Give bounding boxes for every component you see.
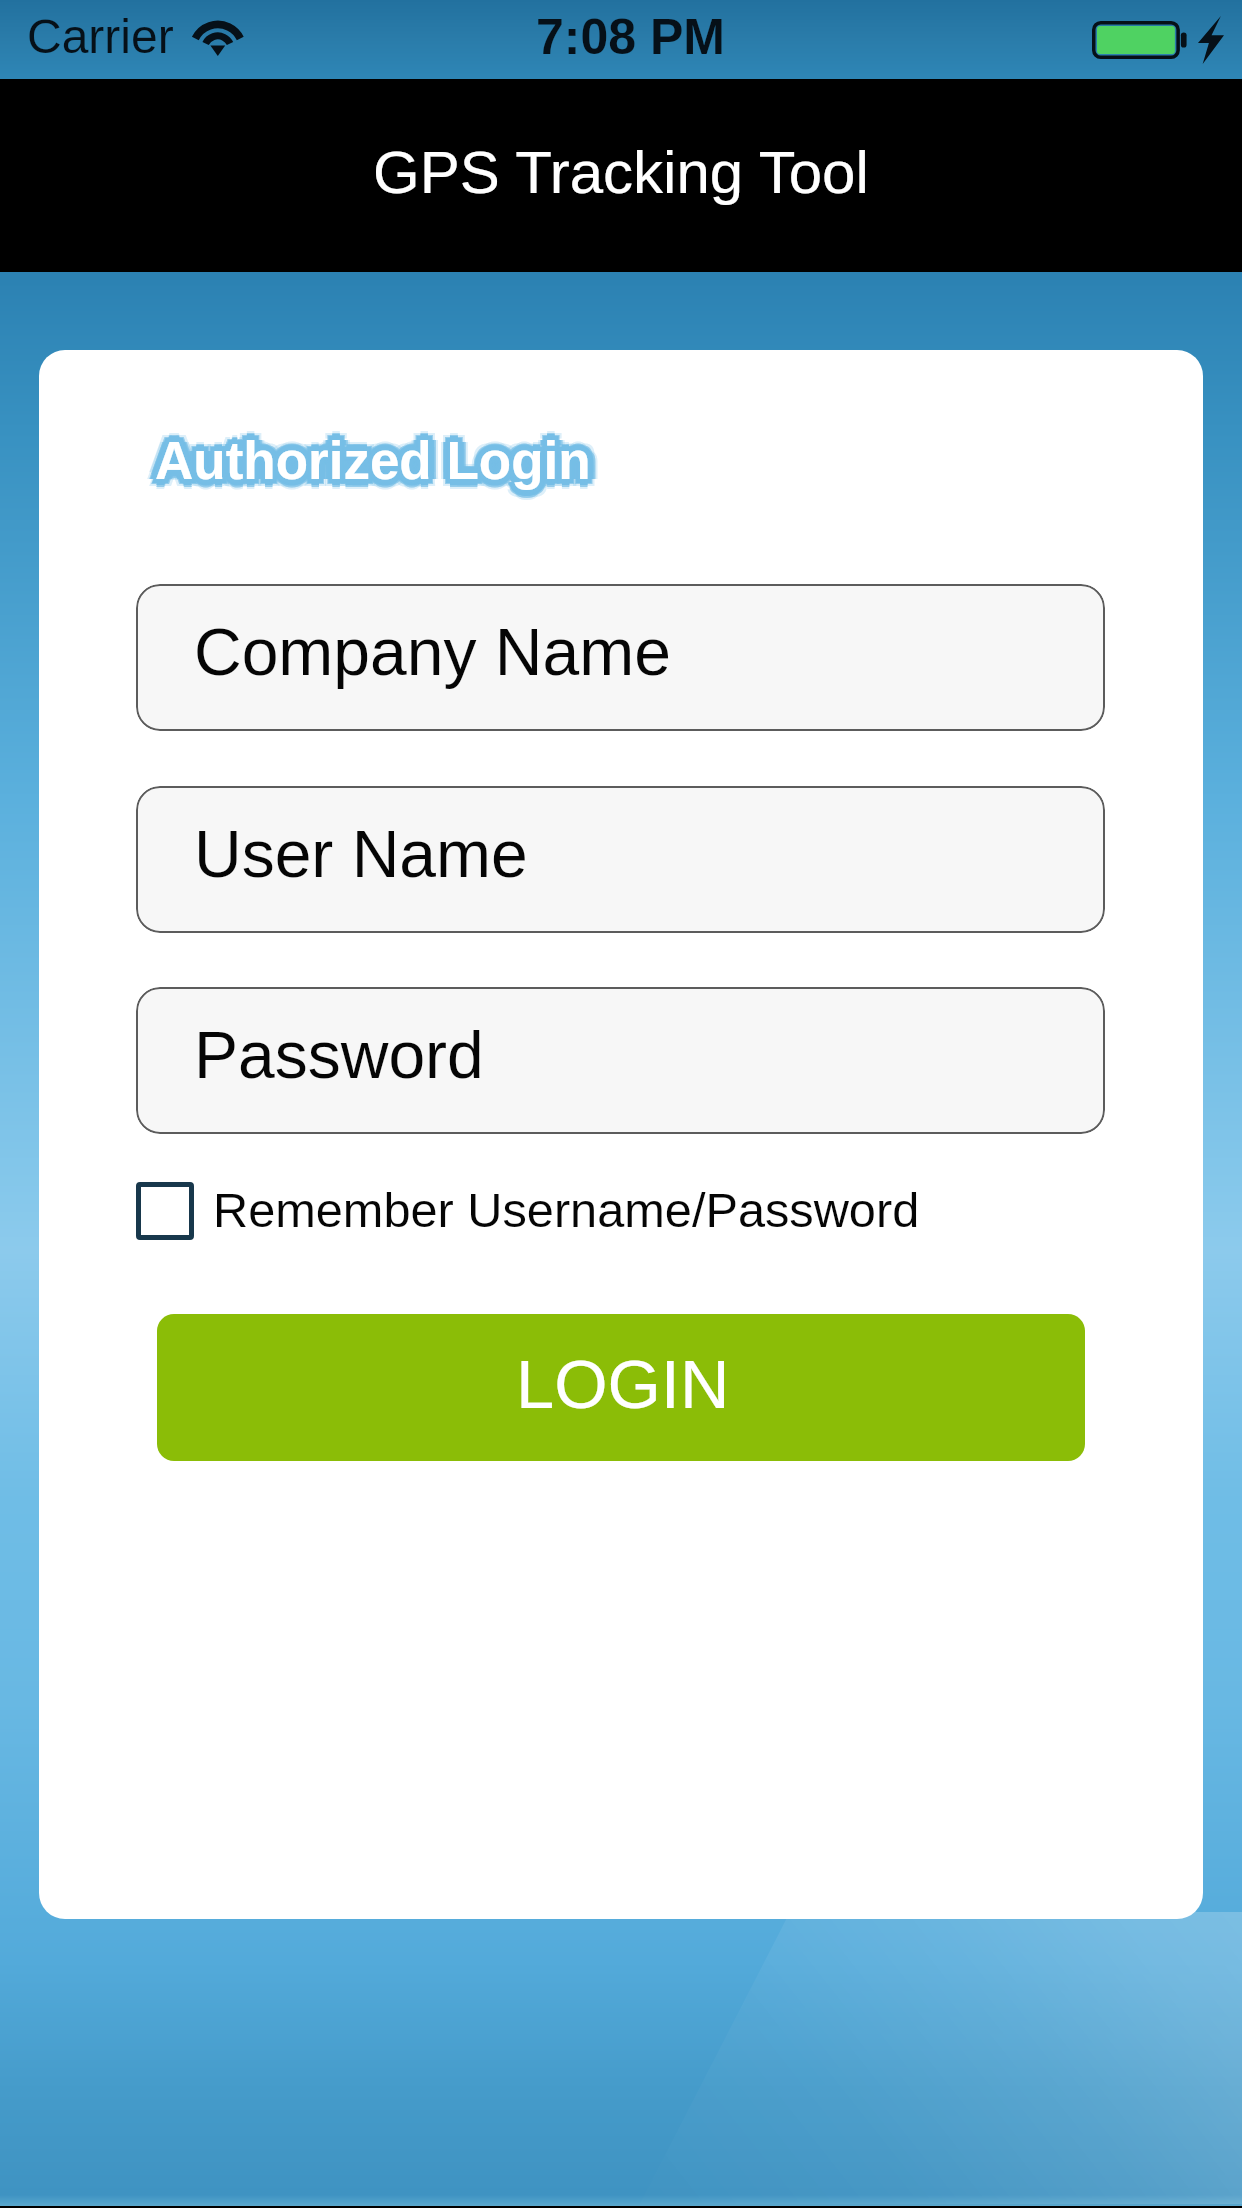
staticText: Authorized Login [155,422,591,481]
staticText: Remember Username/Password [213,1183,920,1237]
staticText: Password [194,1018,484,1092]
staticText: Authorized Login [160,436,596,495]
staticText: Authorized Login [158,428,594,487]
staticText: Authorized Login [150,436,586,495]
staticText: Authorized Login [152,434,588,493]
button[interactable]: Password [136,987,1105,1134]
staticText: Authorized Login [155,437,591,496]
staticText: Authorized Login [148,431,584,490]
button[interactable]: Company Name [136,584,1105,731]
staticText: Authorized Login [162,424,598,483]
staticText: Authorized Login [151,427,587,486]
button[interactable]: User Name [136,786,1105,933]
other: Battery charging [1092,21,1187,59]
staticText: Authorized Login [152,428,588,487]
staticText: Authorized Login [151,431,587,490]
staticText: GPS Tracking Tool [373,139,869,206]
staticText: Company Name [194,615,671,689]
staticText: Authorized Login [159,435,595,494]
staticText: Authorized Login [155,424,591,483]
staticText: Authorized Login [162,438,598,497]
staticText: Authorized Login [155,439,591,498]
staticText: User Name [194,817,528,891]
staticText: Authorized Login [158,434,594,493]
staticText: Authorized Login [159,431,595,490]
staticText: Authorized Login [163,431,599,490]
staticText: Authorized Login [146,431,582,490]
staticText: Authorized Login [159,427,595,486]
staticText: Authorized Login [155,427,591,486]
button[interactable]: Remember Username/Password [136,1182,920,1240]
staticText: Authorized Login [155,425,591,484]
staticText: Authorized Login [155,435,591,494]
staticText: Authorized Login [155,441,591,500]
staticText: Authorized Login [151,435,587,494]
other: Wi-Fi signal [192,24,244,64]
staticText: LOGIN [516,1346,730,1423]
staticText: Authorized Login [149,431,585,490]
staticText: Authorized Login [148,438,584,497]
staticText: Authorized Login [150,426,586,485]
button[interactable]: LOGIN [157,1314,1085,1461]
staticText: Authorized Login [160,426,596,485]
staticText: Carrier [27,10,174,64]
staticText: Authorized Login [161,431,597,490]
staticText: Authorized Login [165,431,601,490]
staticText: 7:08 PM [536,9,725,65]
staticText: Authorized Login [155,431,591,490]
staticText: Authorized Login [148,424,584,483]
